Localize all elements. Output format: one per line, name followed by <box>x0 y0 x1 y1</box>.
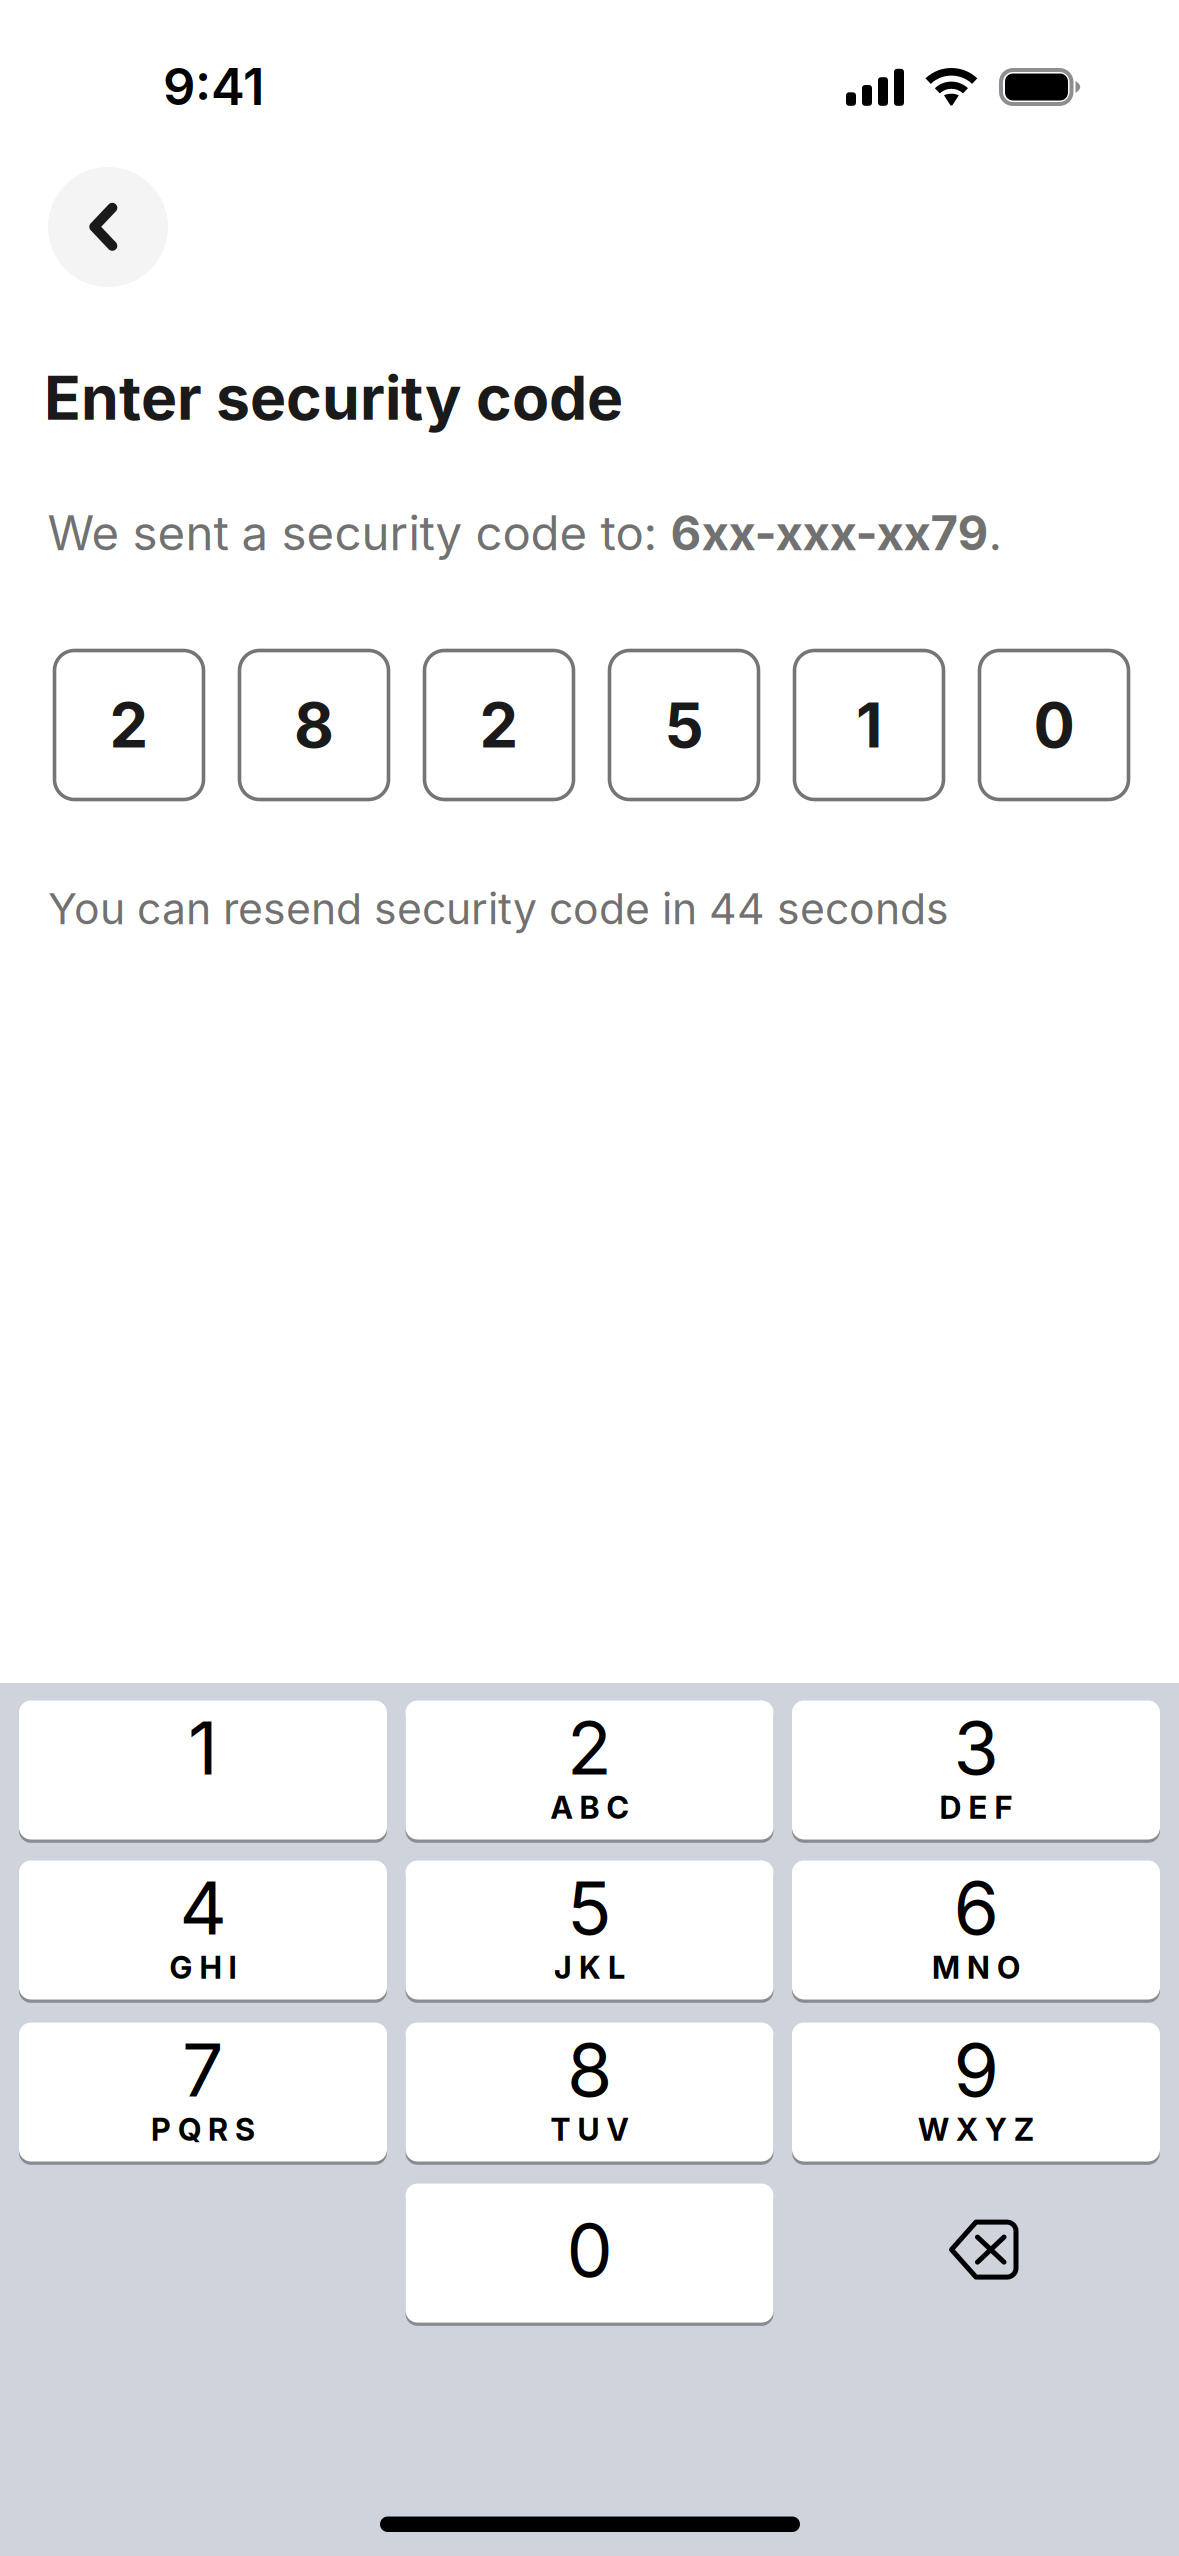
staticText: 8 <box>294 688 334 762</box>
staticText: 0 <box>566 2206 612 2294</box>
button[interactable]: 8 <box>405 2022 773 2164</box>
button[interactable]: 2 <box>405 1700 773 1842</box>
button[interactable]: 0 <box>405 2184 773 2326</box>
staticText: 7 <box>182 2025 224 2114</box>
staticText: 0 <box>1033 688 1074 762</box>
button[interactable]: 4 <box>19 1860 387 2002</box>
button[interactable]: Delete <box>792 2184 1160 2326</box>
staticText: M N O <box>932 1949 1020 1986</box>
staticText: 3 <box>953 1703 998 1792</box>
staticText: You can resend security code in 44 secon… <box>48 883 949 935</box>
staticText: 2 <box>567 1703 612 1792</box>
staticText: 1 <box>188 1703 218 1792</box>
staticText: 5 <box>567 1863 612 1952</box>
staticText: 9 <box>953 2025 998 2114</box>
staticText: 8 <box>567 2025 612 2114</box>
staticText: 6 <box>953 1863 998 1952</box>
button[interactable]: 1 <box>19 1700 387 1842</box>
staticText: G H I <box>169 1949 236 1986</box>
staticText: 5 <box>664 688 703 762</box>
staticText: 4 <box>179 1863 226 1952</box>
staticText: 1 <box>856 688 882 762</box>
staticText: We sent a security code to: 6xx-xxx-xx79… <box>47 505 1002 561</box>
staticText: 2 <box>479 688 518 762</box>
staticText: 9:41 <box>163 56 264 117</box>
staticText: 2 <box>109 688 148 762</box>
button[interactable]: 5 <box>405 1860 773 2002</box>
button[interactable]: 7 <box>19 2022 387 2164</box>
staticText: P Q R S <box>151 2111 255 2148</box>
button[interactable]: 6 <box>792 1860 1160 2002</box>
staticText: T U V <box>550 2111 628 2148</box>
button[interactable]: Back <box>48 167 168 287</box>
staticText: Enter security code <box>44 361 623 434</box>
staticText: J K L <box>554 1949 625 1986</box>
staticText: D E F <box>939 1789 1012 1826</box>
button[interactable]: 3 <box>792 1700 1160 1842</box>
button[interactable]: 9 <box>792 2022 1160 2164</box>
staticText: W X Y Z <box>918 2111 1034 2148</box>
staticText: A B C <box>550 1789 628 1826</box>
